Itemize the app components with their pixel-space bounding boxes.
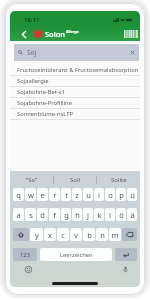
button[interactable]: g	[61, 208, 71, 221]
button[interactable]: Emoji	[23, 264, 33, 274]
staticText: Soj	[27, 48, 37, 57]
staticText: h	[75, 210, 80, 220]
staticText: ö	[119, 210, 124, 220]
staticText: Allergo	[66, 29, 79, 34]
staticText: s	[29, 210, 33, 220]
staticText: f	[53, 210, 56, 220]
button[interactable]: Enter	[115, 248, 137, 261]
button[interactable]: v	[70, 228, 82, 241]
button[interactable]: Voice input	[120, 264, 130, 274]
button[interactable]: n	[96, 228, 108, 241]
staticText: m	[111, 230, 119, 240]
button[interactable]: y	[30, 228, 43, 241]
staticText: a	[16, 210, 21, 220]
button[interactable]: x	[44, 228, 56, 241]
staticText: ü	[130, 190, 135, 200]
staticText: Leerzeichen	[60, 251, 93, 259]
button[interactable]: “So”	[10, 171, 54, 188]
button[interactable]: z	[72, 188, 82, 201]
staticText: Solon	[45, 29, 66, 39]
staticText: l	[109, 210, 111, 220]
button[interactable]: q	[13, 188, 24, 201]
staticText: k	[97, 210, 102, 220]
button[interactable]: Sojabohne-Profilline	[10, 98, 140, 108]
button[interactable]: t	[61, 188, 71, 201]
staticText: b	[87, 230, 92, 240]
staticText: g	[64, 210, 69, 220]
staticText: o	[108, 190, 113, 200]
staticText: Sojabohne-Bet-v1	[17, 88, 66, 96]
button[interactable]: ü	[127, 188, 137, 201]
button[interactable]: Sojaallergie	[10, 76, 140, 86]
staticText: p	[119, 190, 124, 200]
button[interactable]: h	[72, 208, 82, 221]
button[interactable]: Soj	[14, 44, 139, 61]
button[interactable]: l	[105, 208, 115, 221]
button[interactable]: Soll	[54, 171, 97, 188]
button[interactable]: Sojabohne-Bet-v1	[10, 87, 140, 97]
staticText: c	[61, 230, 65, 240]
button[interactable]: p	[116, 188, 126, 201]
staticText: Sojaallergie	[17, 77, 49, 85]
staticText: d	[40, 210, 45, 220]
button[interactable]: ä	[127, 208, 137, 221]
button[interactable]: Back	[19, 29, 30, 40]
button[interactable]: Scan barcode	[121, 27, 140, 41]
button[interactable]: m	[109, 228, 121, 241]
button[interactable]: r	[49, 188, 60, 201]
staticText: 18:11	[24, 16, 40, 24]
staticText: t	[65, 190, 68, 200]
staticText: x	[48, 230, 52, 240]
staticText: Sojabohne-Profilline	[17, 99, 72, 107]
staticText: v	[74, 230, 78, 240]
button[interactable]: i	[94, 188, 104, 201]
button[interactable]: ö	[116, 208, 126, 221]
button[interactable]: Fructoseintoleranz & Fructosemalabsorpti…	[10, 65, 140, 75]
button[interactable]: b	[83, 228, 95, 241]
staticText: e	[40, 190, 45, 200]
button[interactable]: o	[105, 188, 115, 201]
staticText: 123	[20, 251, 30, 259]
staticText: Sonnenblume-nsLTP	[17, 110, 73, 118]
button[interactable]: Sollte	[97, 171, 140, 188]
button[interactable]: j	[83, 208, 93, 221]
staticText: u	[86, 190, 91, 200]
staticText: i	[98, 190, 100, 200]
button[interactable]: 123	[13, 248, 37, 261]
button[interactable]: u	[83, 188, 93, 201]
staticText: r	[53, 190, 57, 200]
button[interactable]: Sonnenblume-nsLTP	[10, 109, 140, 119]
staticText: q	[16, 190, 21, 200]
button[interactable]: c	[57, 228, 69, 241]
staticText: y	[35, 230, 39, 240]
staticText: z	[75, 190, 79, 200]
button[interactable]: Leerzeichen	[40, 248, 112, 261]
staticText: Sollte	[111, 176, 127, 184]
button[interactable]: w	[25, 188, 36, 201]
button[interactable]: a	[13, 208, 24, 221]
button[interactable]: k	[94, 208, 104, 221]
staticText: Fructoseintoleranz & Fructosemalabsorpti…	[17, 66, 139, 74]
button[interactable]: Shift	[13, 228, 29, 241]
staticText: w	[28, 190, 34, 200]
button[interactable]: s	[25, 208, 36, 221]
staticText: “So”	[26, 176, 38, 184]
staticText: j	[87, 210, 89, 220]
staticText: ä	[130, 210, 135, 220]
staticText: n	[100, 230, 105, 240]
button[interactable]: f	[49, 208, 60, 221]
button[interactable]: d	[37, 208, 48, 221]
button[interactable]: Backspace	[122, 228, 137, 241]
staticText: Soll	[70, 176, 81, 184]
button[interactable]: e	[37, 188, 48, 201]
